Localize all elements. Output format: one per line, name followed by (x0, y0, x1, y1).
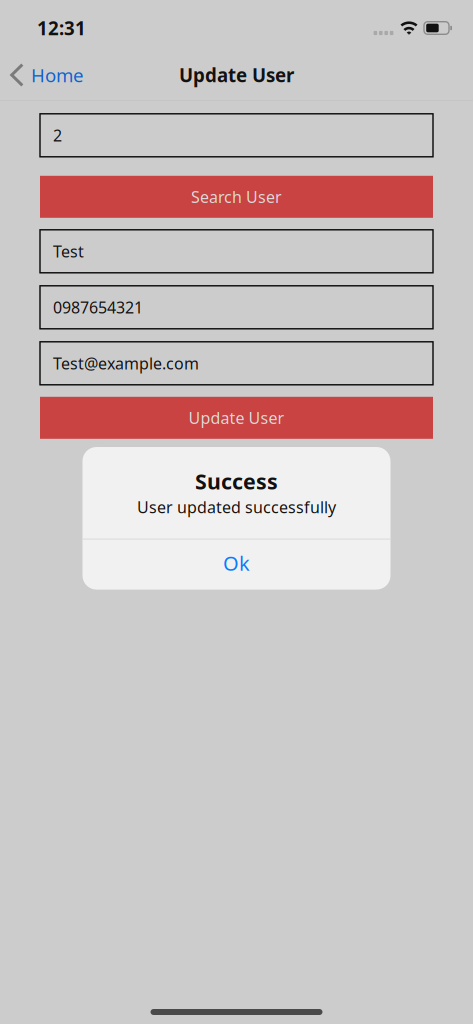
button[interactable]: Back to Home (0, 55, 94, 95)
staticText: Home (31, 63, 84, 87)
staticText: 2 (53, 125, 62, 146)
staticText: User updated successfully (137, 496, 336, 517)
staticText: Test@example.com (53, 353, 199, 374)
staticText: Ok (223, 550, 250, 576)
staticText: Test (53, 241, 84, 262)
staticText: Update User (188, 407, 284, 428)
staticText: Search User (191, 186, 282, 207)
staticText: 0987654321 (53, 297, 143, 318)
staticText: Update User (179, 63, 294, 87)
staticText: 12:31 (37, 16, 86, 40)
staticText: Success (195, 467, 278, 495)
button[interactable]: Search User (40, 176, 433, 218)
button[interactable]: Ok (82, 540, 390, 590)
button[interactable]: Update User (40, 397, 433, 439)
